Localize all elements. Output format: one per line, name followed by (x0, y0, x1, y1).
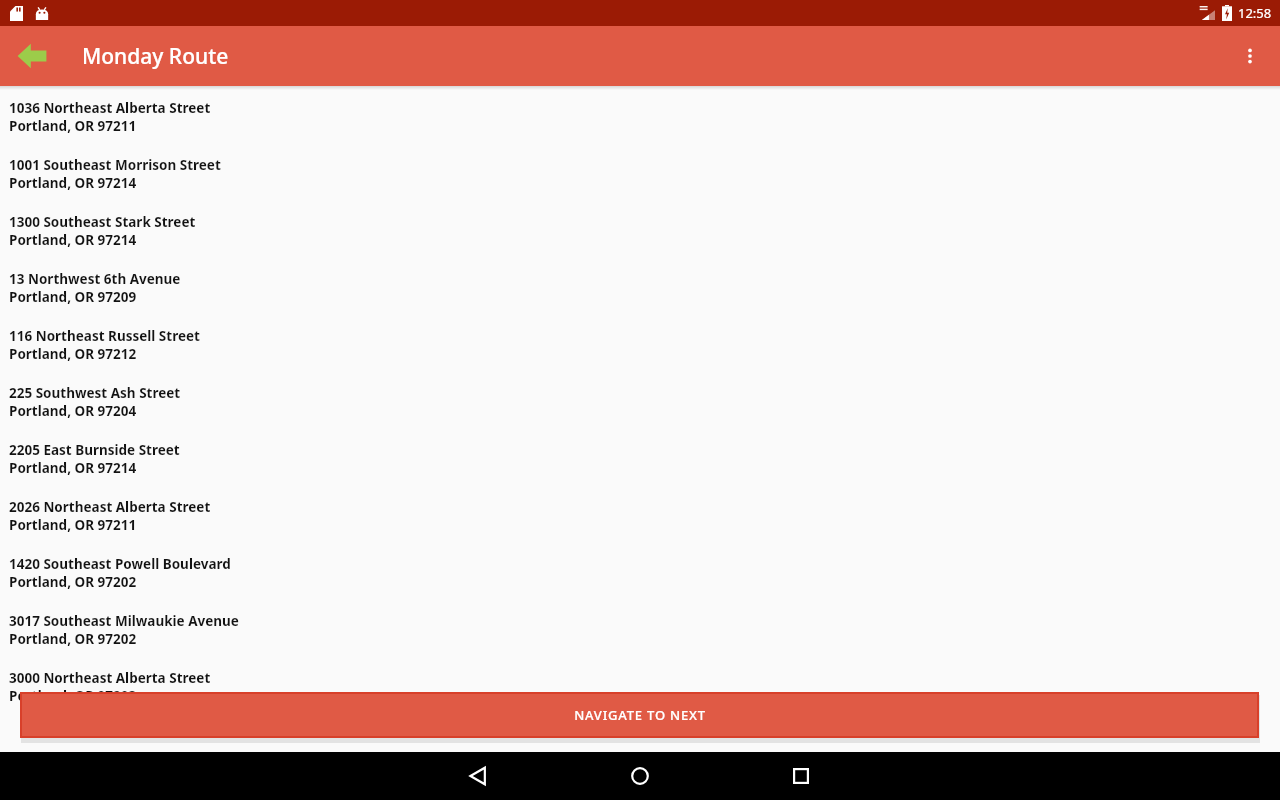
staticText: 3000 Northeast Alberta Street (9, 669, 211, 687)
button[interactable]: Recent apps (775, 752, 827, 800)
button[interactable]: 3017 Southeast Milwaukie Avenue (0, 612, 1280, 669)
button[interactable]: 2026 Northeast Alberta Street (0, 498, 1280, 555)
staticText: Portland, OR 97214 (9, 174, 137, 192)
staticText: 1300 Southeast Stark Street (9, 213, 196, 231)
staticText: Portland, OR 97209 (9, 288, 137, 306)
staticText: 1036 Northeast Alberta Street (9, 99, 211, 117)
button[interactable]: 116 Northeast Russell Street (0, 327, 1280, 384)
button[interactable]: Back (452, 752, 504, 800)
button[interactable]: 3000 Northeast Alberta Street (0, 669, 1280, 726)
staticText: 2205 East Burnside Street (9, 441, 180, 459)
staticText: Portland, OR 97214 (9, 459, 137, 477)
staticText: 13 Northwest 6th Avenue (9, 270, 181, 288)
button[interactable]: Home (614, 752, 666, 800)
staticText: 116 Northeast Russell Street (9, 327, 200, 345)
staticText: Portland, OR 97203 (9, 687, 137, 705)
button[interactable]: 1300 Southeast Stark Street (0, 213, 1280, 270)
staticText: Portland, OR 97214 (9, 231, 137, 249)
button[interactable]: 1420 Southeast Powell Boulevard (0, 555, 1280, 612)
button[interactable]: Back (6, 30, 58, 82)
button[interactable]: 13 Northwest 6th Avenue (0, 270, 1280, 327)
button[interactable]: More options (1226, 32, 1274, 80)
staticText: NAVIGATE TO NEXT (574, 706, 706, 724)
button[interactable]: NAVIGATE TO NEXT (22, 694, 1257, 736)
staticText: 1001 Southeast Morrison Street (9, 156, 221, 174)
button[interactable]: 225 Southwest Ash Street (0, 384, 1280, 441)
staticText: 12:58 (1238, 4, 1272, 22)
staticText: Monday Route (82, 42, 229, 71)
staticText: 1420 Southeast Powell Boulevard (9, 555, 231, 573)
staticText: Portland, OR 97202 (9, 573, 137, 591)
staticText: Portland, OR 97211 (9, 516, 137, 534)
button[interactable]: 2205 East Burnside Street (0, 441, 1280, 498)
button[interactable]: 1036 Northeast Alberta Street (0, 99, 1280, 156)
staticText: Portland, OR 97212 (9, 345, 137, 363)
staticText: 2026 Northeast Alberta Street (9, 498, 211, 516)
staticText: Portland, OR 97211 (9, 117, 137, 135)
staticText: 3017 Southeast Milwaukie Avenue (9, 612, 239, 630)
staticText: 225 Southwest Ash Street (9, 384, 181, 402)
button[interactable]: 1001 Southeast Morrison Street (0, 156, 1280, 213)
staticText: Portland, OR 97204 (9, 402, 137, 420)
staticText: Portland, OR 97202 (9, 630, 137, 648)
